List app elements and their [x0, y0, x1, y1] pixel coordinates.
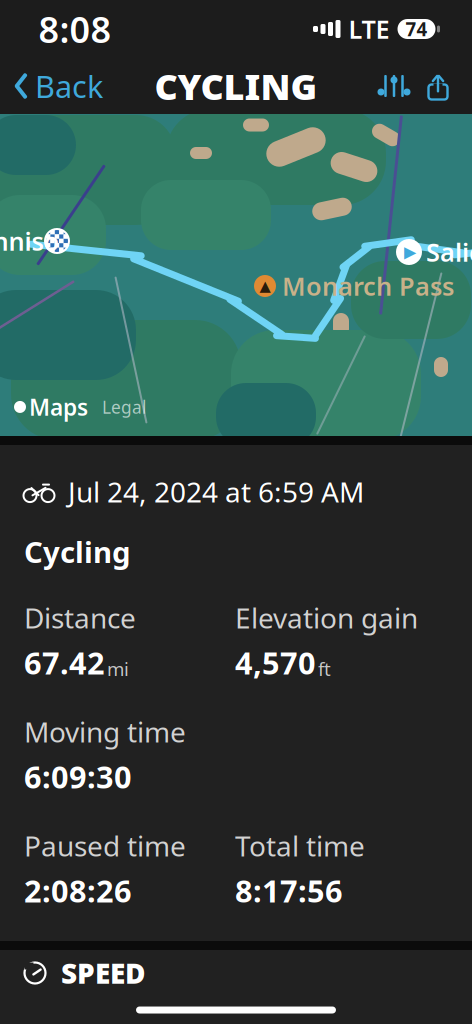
staticText: 6:09:30: [24, 756, 132, 797]
staticText: Monarch Pass: [282, 269, 454, 303]
button[interactable]: Filters: [372, 64, 416, 108]
button[interactable]: Edit workout: [25, 1006, 447, 1024]
staticText: Cycling: [24, 532, 131, 571]
staticText: Moving time: [24, 713, 186, 750]
staticText: Jul 24, 2024 at 6:59 AM: [68, 473, 364, 510]
staticText: ▶: [404, 243, 416, 261]
staticText: ft: [318, 656, 331, 681]
staticText: SPEED: [61, 954, 146, 992]
staticText: Maps: [29, 392, 88, 422]
staticText: Paused time: [24, 827, 186, 864]
staticText: Elevation gain: [235, 599, 418, 636]
staticText: mi: [107, 656, 129, 681]
staticText: 4,570: [235, 642, 316, 683]
staticText: 2:08:26: [24, 870, 132, 911]
button[interactable]: Back: [0, 58, 103, 114]
staticText: 67.42: [24, 642, 105, 683]
staticText: LTE: [348, 12, 389, 46]
staticText: Legal: [102, 395, 146, 418]
staticText: Back: [35, 66, 103, 106]
staticText: 8:17:56: [235, 870, 343, 911]
staticText: Salida: [426, 235, 472, 269]
staticText: Recorded on ELEMNT BOLT: [68, 945, 393, 978]
staticText: CYCLING: [154, 62, 317, 110]
staticText: unniso: [0, 224, 59, 258]
staticText: ▲: [259, 278, 270, 294]
staticText: 8:08: [38, 5, 111, 53]
staticText: Total time: [235, 827, 365, 864]
button[interactable]: Share: [416, 64, 460, 108]
staticText: Distance: [24, 599, 136, 636]
staticText: 74: [405, 17, 427, 41]
